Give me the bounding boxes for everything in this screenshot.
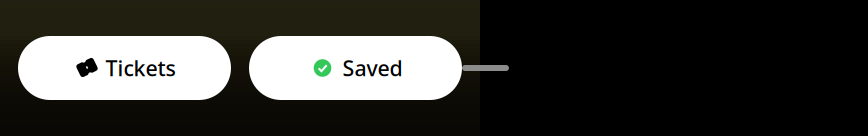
button[interactable]: Tickets: [18, 36, 231, 100]
button[interactable]: Saved: [249, 36, 462, 100]
staticText: Saved: [343, 54, 403, 82]
staticText: Tickets: [105, 54, 175, 82]
